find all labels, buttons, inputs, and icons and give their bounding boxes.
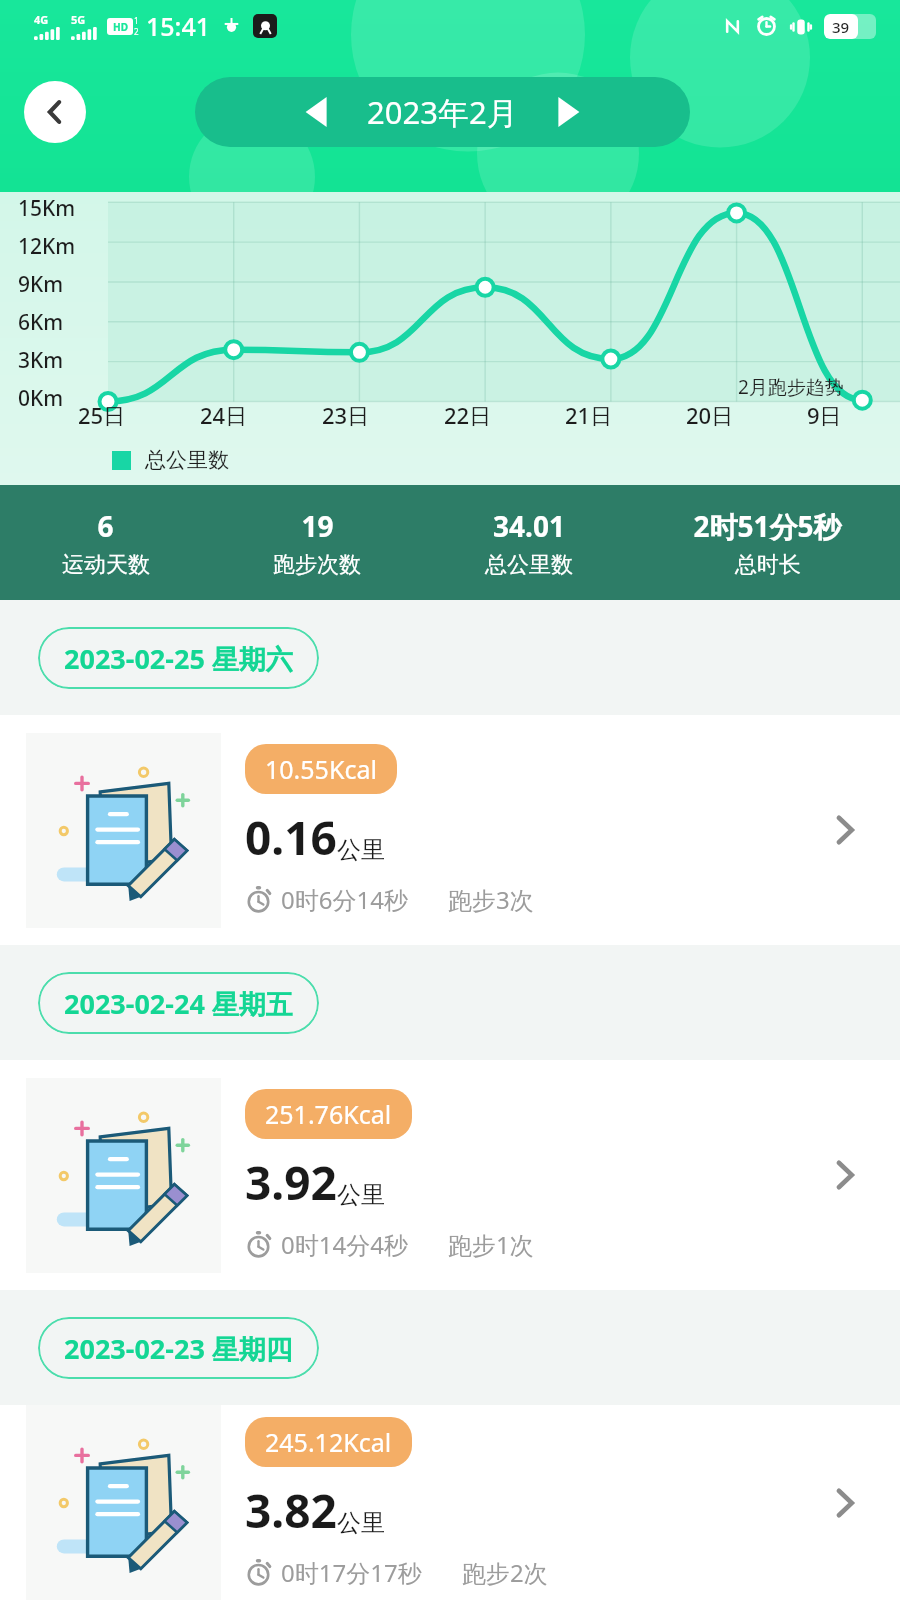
- staticText: 公里: [337, 1180, 385, 1210]
- staticText: 24日: [200, 400, 248, 430]
- staticText: 20日: [686, 400, 734, 430]
- staticText: 2023年2月: [367, 91, 518, 133]
- staticText: 22日: [444, 400, 492, 430]
- button[interactable]: Open detail: [816, 1146, 874, 1204]
- staticText: 25日: [78, 400, 126, 430]
- staticText: 跑步次数: [273, 551, 361, 579]
- staticText: 2: [134, 26, 139, 37]
- staticText: 3.92: [245, 1151, 337, 1214]
- staticText: 0时17分17秒: [281, 1556, 422, 1589]
- staticText: 公里: [337, 1508, 385, 1538]
- staticText: 1: [134, 15, 139, 26]
- staticText: 跑步3次: [448, 883, 534, 916]
- button[interactable]: 245.12Kcal: [0, 1405, 900, 1600]
- staticText: 0时6分14秒: [281, 883, 408, 916]
- staticText: 19: [301, 507, 334, 545]
- staticText: 跑步1次: [448, 1228, 534, 1261]
- staticText: 3.82: [245, 1479, 337, 1542]
- staticText: 15Km: [18, 194, 76, 223]
- staticText: 39: [832, 17, 850, 37]
- staticText: HD: [113, 20, 128, 34]
- staticText: 跑步2次: [462, 1556, 548, 1589]
- button[interactable]: 251.76Kcal: [0, 1060, 900, 1290]
- button[interactable]: Previous month: [195, 77, 690, 147]
- staticText: 公里: [337, 835, 385, 865]
- button[interactable]: 2时51分5秒: [635, 507, 900, 579]
- staticText: 总时长: [735, 551, 801, 579]
- button[interactable]: 2023-02-24 星期五: [38, 972, 319, 1034]
- staticText: 2023-02-23 星期四: [64, 1330, 293, 1367]
- staticText: 运动天数: [62, 551, 150, 579]
- staticText: 0.16: [245, 806, 337, 869]
- staticText: 15:41: [146, 9, 211, 43]
- staticText: 2023-02-25 星期六: [64, 640, 293, 677]
- button[interactable]: 6: [0, 507, 211, 579]
- staticText: 6Km: [18, 308, 64, 337]
- staticText: 4G: [34, 12, 49, 27]
- staticText: 9日: [807, 400, 842, 430]
- staticText: 245.12Kcal: [265, 1425, 392, 1459]
- button[interactable]: 10.55Kcal: [0, 715, 900, 945]
- staticText: 2023-02-24 星期五: [64, 985, 293, 1022]
- button[interactable]: 19: [211, 507, 423, 579]
- staticText: 12Km: [18, 232, 76, 261]
- button[interactable]: Open detail: [816, 801, 874, 859]
- staticText: 10.55Kcal: [265, 752, 377, 786]
- button[interactable]: 34.01: [423, 507, 635, 579]
- staticText: 21日: [565, 400, 613, 430]
- staticText: 3Km: [18, 346, 64, 375]
- staticText: 0时14分4秒: [281, 1228, 408, 1261]
- button[interactable]: Previous month: [289, 84, 345, 140]
- staticText: 9Km: [18, 270, 64, 299]
- staticText: 2月跑步趋势: [738, 374, 844, 400]
- staticText: 0Km: [18, 384, 64, 413]
- staticText: 总公里数: [145, 447, 229, 473]
- button[interactable]: Next month: [540, 84, 596, 140]
- staticText: 5G: [71, 12, 86, 27]
- button[interactable]: 2023-02-25 星期六: [38, 627, 319, 689]
- button[interactable]: Back: [24, 81, 86, 143]
- staticText: 2时51分5秒: [693, 507, 842, 545]
- staticText: 23日: [322, 400, 370, 430]
- button[interactable]: Open detail: [816, 1474, 874, 1532]
- staticText: 251.76Kcal: [265, 1097, 392, 1131]
- staticText: 6: [97, 507, 114, 545]
- staticText: 总公里数: [485, 551, 573, 579]
- button[interactable]: 2023-02-23 星期四: [38, 1317, 319, 1379]
- staticText: 34.01: [493, 507, 565, 545]
